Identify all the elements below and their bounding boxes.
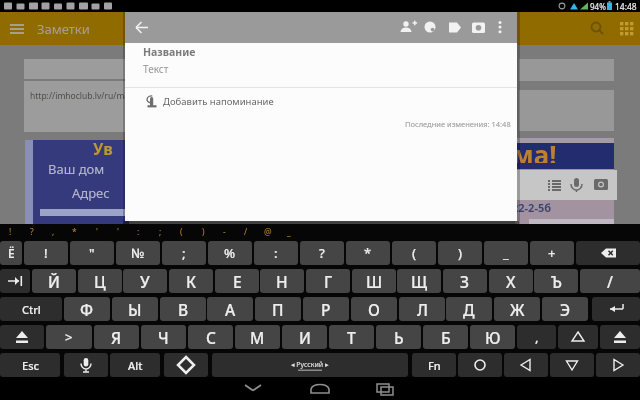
button[interactable]: :: [254, 241, 298, 265]
button[interactable]: Т: [329, 325, 374, 349]
button[interactable]: ,: [517, 325, 556, 349]
button[interactable]: [372, 379, 398, 399]
button[interactable]: Я: [94, 325, 139, 349]
button[interactable]: Е: [215, 269, 259, 293]
button[interactable]: ◂ Русский ▸: [212, 353, 408, 377]
button[interactable]: ?: [300, 241, 344, 265]
staticText: №: [131, 244, 145, 262]
button[interactable]: [504, 353, 548, 377]
button[interactable]: З: [443, 269, 487, 293]
staticText: -: [223, 226, 226, 238]
button[interactable]: [307, 379, 333, 399]
staticText: Щ: [411, 271, 428, 292]
button[interactable]: Ш: [352, 269, 396, 293]
button[interactable]: Ь: [376, 325, 421, 349]
staticText: %: [224, 244, 236, 262]
staticText: В: [178, 299, 189, 320]
button[interactable]: [600, 325, 640, 349]
staticText: ;: [182, 244, 186, 262]
button[interactable]: /: [580, 269, 640, 293]
button[interactable]: [240, 379, 266, 399]
staticText: ): [202, 226, 205, 238]
button[interactable]: +: [530, 241, 574, 265]
button[interactable]: [576, 241, 640, 265]
button[interactable]: [458, 353, 502, 377]
button[interactable]: Fn: [412, 353, 456, 377]
staticText: Esc: [22, 358, 39, 373]
button[interactable]: Г: [306, 269, 350, 293]
button[interactable]: [558, 325, 598, 349]
button[interactable]: И: [282, 325, 327, 349]
staticText: 94%: [590, 1, 606, 12]
button[interactable]: Ы: [112, 297, 158, 321]
staticText: Ж: [510, 299, 525, 320]
staticText: :: [137, 226, 140, 238]
button[interactable]: Э: [542, 297, 588, 321]
button[interactable]: Ч: [141, 325, 186, 349]
staticText: ма!: [512, 137, 557, 163]
button[interactable]: [0, 269, 30, 293]
button[interactable]: Ъ: [534, 269, 578, 293]
button[interactable]: У: [123, 269, 167, 293]
staticText: Е: [233, 271, 242, 292]
button[interactable]: %: [208, 241, 252, 265]
staticText: Л: [417, 299, 428, 320]
button[interactable]: Х: [489, 269, 533, 293]
staticText: (: [412, 244, 417, 262]
button[interactable]: ": [70, 241, 114, 265]
button[interactable]: ): [438, 241, 482, 265]
button[interactable]: А: [207, 297, 253, 321]
staticText: +: [548, 244, 556, 262]
staticText: Fn: [428, 358, 441, 373]
button[interactable]: Ctrl: [0, 297, 62, 321]
button[interactable]: Ц: [78, 269, 122, 293]
staticText: ": [89, 244, 95, 262]
staticText: ,: [52, 226, 55, 238]
staticText: Ы: [128, 299, 142, 320]
button[interactable]: !: [24, 241, 68, 265]
staticText: О: [368, 299, 380, 320]
button[interactable]: [164, 353, 208, 377]
button[interactable]: >: [46, 325, 92, 349]
button[interactable]: №: [116, 241, 160, 265]
staticText: *: [364, 244, 372, 262]
button[interactable]: _: [484, 241, 528, 265]
button[interactable]: Й: [32, 269, 76, 293]
button[interactable]: Ф: [64, 297, 110, 321]
staticText: У: [140, 271, 150, 292]
button[interactable]: [596, 353, 640, 377]
button[interactable]: Р: [303, 297, 349, 321]
staticText: !: [44, 244, 48, 262]
button[interactable]: [64, 353, 108, 377]
button[interactable]: Ю: [470, 325, 515, 349]
button[interactable]: [592, 297, 640, 321]
button[interactable]: М: [235, 325, 280, 349]
staticText: Alt: [128, 358, 143, 373]
button[interactable]: П: [255, 297, 301, 321]
button[interactable]: Д: [446, 297, 492, 321]
button[interactable]: О: [351, 297, 397, 321]
staticText: Текст: [143, 62, 169, 76]
staticText: _: [503, 244, 509, 262]
button[interactable]: ;: [162, 241, 206, 265]
staticText: @: [264, 226, 272, 238]
button[interactable]: Ё: [0, 241, 22, 265]
staticText: ': [117, 226, 119, 238]
button[interactable]: В: [160, 297, 206, 321]
button[interactable]: [0, 325, 44, 349]
staticText: Ув: [93, 138, 113, 160]
button[interactable]: Esc: [0, 353, 60, 377]
staticText: К: [186, 271, 196, 292]
button[interactable]: *: [346, 241, 390, 265]
button[interactable]: Ж: [494, 297, 540, 321]
staticText: _: [287, 226, 291, 238]
button[interactable]: Л: [399, 297, 445, 321]
button[interactable]: К: [169, 269, 213, 293]
button[interactable]: Alt: [110, 353, 160, 377]
button[interactable]: С: [188, 325, 233, 349]
button[interactable]: (: [392, 241, 436, 265]
button[interactable]: Щ: [397, 269, 441, 293]
button[interactable]: [550, 353, 594, 377]
button[interactable]: Н: [260, 269, 304, 293]
button[interactable]: Б: [423, 325, 468, 349]
